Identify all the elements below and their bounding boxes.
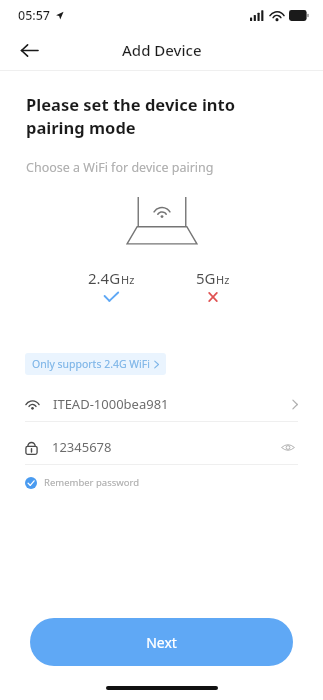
- staticText: Add Device: [122, 40, 202, 60]
- staticText: Only supports 2.4G WiFi: [32, 357, 150, 371]
- staticText: Next: [146, 633, 177, 652]
- button[interactable]: Show password: [278, 437, 298, 457]
- button[interactable]: Back: [10, 31, 48, 69]
- staticText: Choose a WiFi for device pairing: [26, 159, 214, 176]
- staticText: Please set the device into pairing mode: [26, 93, 297, 139]
- staticText: 2.4G: [88, 268, 121, 288]
- staticText: Remember password: [44, 476, 140, 489]
- button[interactable]: Remember password: [0, 474, 323, 491]
- button[interactable]: ITEAD-1000bea981: [0, 387, 323, 421]
- button[interactable]: 12345678: [0, 430, 323, 464]
- staticText: Hz: [121, 272, 135, 287]
- staticText: ITEAD-1000bea981: [53, 395, 169, 413]
- staticText: 5G: [196, 268, 216, 288]
- button[interactable]: Only supports 2.4G WiFi: [25, 353, 166, 375]
- button[interactable]: Next: [30, 618, 293, 666]
- staticText: 12345678: [52, 438, 112, 456]
- staticText: Hz: [216, 272, 230, 287]
- staticText: 05:57: [18, 7, 51, 24]
